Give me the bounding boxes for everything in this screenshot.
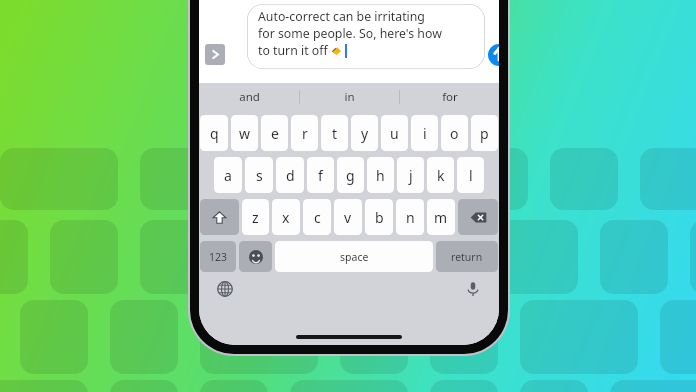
staticText: a — [224, 166, 232, 185]
button[interactable]: and — [199, 83, 299, 111]
staticText: b — [375, 208, 384, 227]
staticText: to turn it off — [258, 42, 331, 59]
button[interactable]: b — [365, 199, 393, 235]
staticText: u — [390, 124, 399, 143]
button[interactable]: h — [367, 157, 394, 193]
button[interactable]: Shift — [200, 199, 239, 235]
button[interactable]: n — [396, 199, 424, 235]
staticText: r — [302, 124, 308, 143]
staticText: i — [423, 124, 427, 143]
button[interactable]: space — [275, 241, 433, 272]
staticText: o — [450, 124, 459, 143]
staticText: z — [252, 208, 259, 227]
button[interactable]: v — [334, 199, 362, 235]
button[interactable]: in — [300, 83, 399, 111]
button[interactable]: z — [242, 199, 269, 235]
button[interactable]: Expand apps — [205, 44, 225, 65]
staticText: for some people. So, here's how — [258, 25, 442, 42]
staticText: return — [451, 250, 483, 264]
button[interactable]: i — [411, 115, 438, 151]
button[interactable]: for — [400, 83, 499, 111]
button[interactable]: y — [351, 115, 378, 151]
button[interactable]: s — [245, 157, 273, 193]
button[interactable]: Emoji — [239, 241, 272, 272]
staticText: d — [286, 166, 295, 185]
button[interactable]: x — [272, 199, 300, 235]
staticText: m — [434, 208, 448, 227]
button[interactable]: j — [397, 157, 424, 193]
staticText: in — [344, 89, 355, 105]
staticText: f — [318, 166, 323, 185]
button[interactable]: q — [200, 115, 228, 151]
button[interactable]: Dictate — [461, 277, 485, 301]
staticText: h — [376, 166, 385, 185]
button[interactable]: o — [441, 115, 468, 151]
staticText: n — [406, 208, 415, 227]
staticText: space — [340, 250, 369, 264]
button[interactable]: c — [303, 199, 331, 235]
staticText: for — [442, 89, 458, 105]
staticText: j — [409, 166, 413, 185]
staticText: p — [480, 124, 489, 143]
button[interactable]: Change keyboard language — [213, 277, 237, 301]
button[interactable]: l — [457, 157, 484, 193]
staticText: x — [282, 208, 290, 227]
staticText: g — [346, 166, 355, 185]
button[interactable]: Backspace — [458, 199, 498, 235]
staticText: s — [256, 166, 263, 185]
staticText: v — [344, 208, 352, 227]
staticText: c — [314, 208, 321, 227]
staticText: t — [332, 124, 338, 143]
button[interactable]: t — [321, 115, 348, 151]
staticText: Auto-correct can be irritating — [258, 8, 425, 25]
button[interactable]: e — [261, 115, 288, 151]
button[interactable]: m — [427, 199, 455, 235]
staticText: l — [469, 166, 473, 185]
button[interactable]: k — [427, 157, 454, 193]
staticText: k — [437, 166, 445, 185]
staticText: and — [239, 89, 260, 105]
button[interactable]: u — [381, 115, 408, 151]
button[interactable]: r — [291, 115, 318, 151]
button[interactable]: a — [214, 157, 242, 193]
button[interactable]: 123 — [200, 241, 236, 272]
button[interactable]: f — [307, 157, 334, 193]
button[interactable]: w — [231, 115, 258, 151]
staticText: y — [361, 124, 369, 143]
button[interactable]: Send — [488, 44, 499, 66]
button[interactable]: d — [276, 157, 304, 193]
staticText: w — [239, 124, 251, 143]
staticText: 123 — [209, 250, 228, 264]
staticText: q — [210, 124, 219, 143]
button[interactable]: return — [436, 241, 498, 272]
staticText: e — [271, 124, 279, 143]
button[interactable]: p — [471, 115, 498, 151]
button[interactable]: g — [337, 157, 364, 193]
